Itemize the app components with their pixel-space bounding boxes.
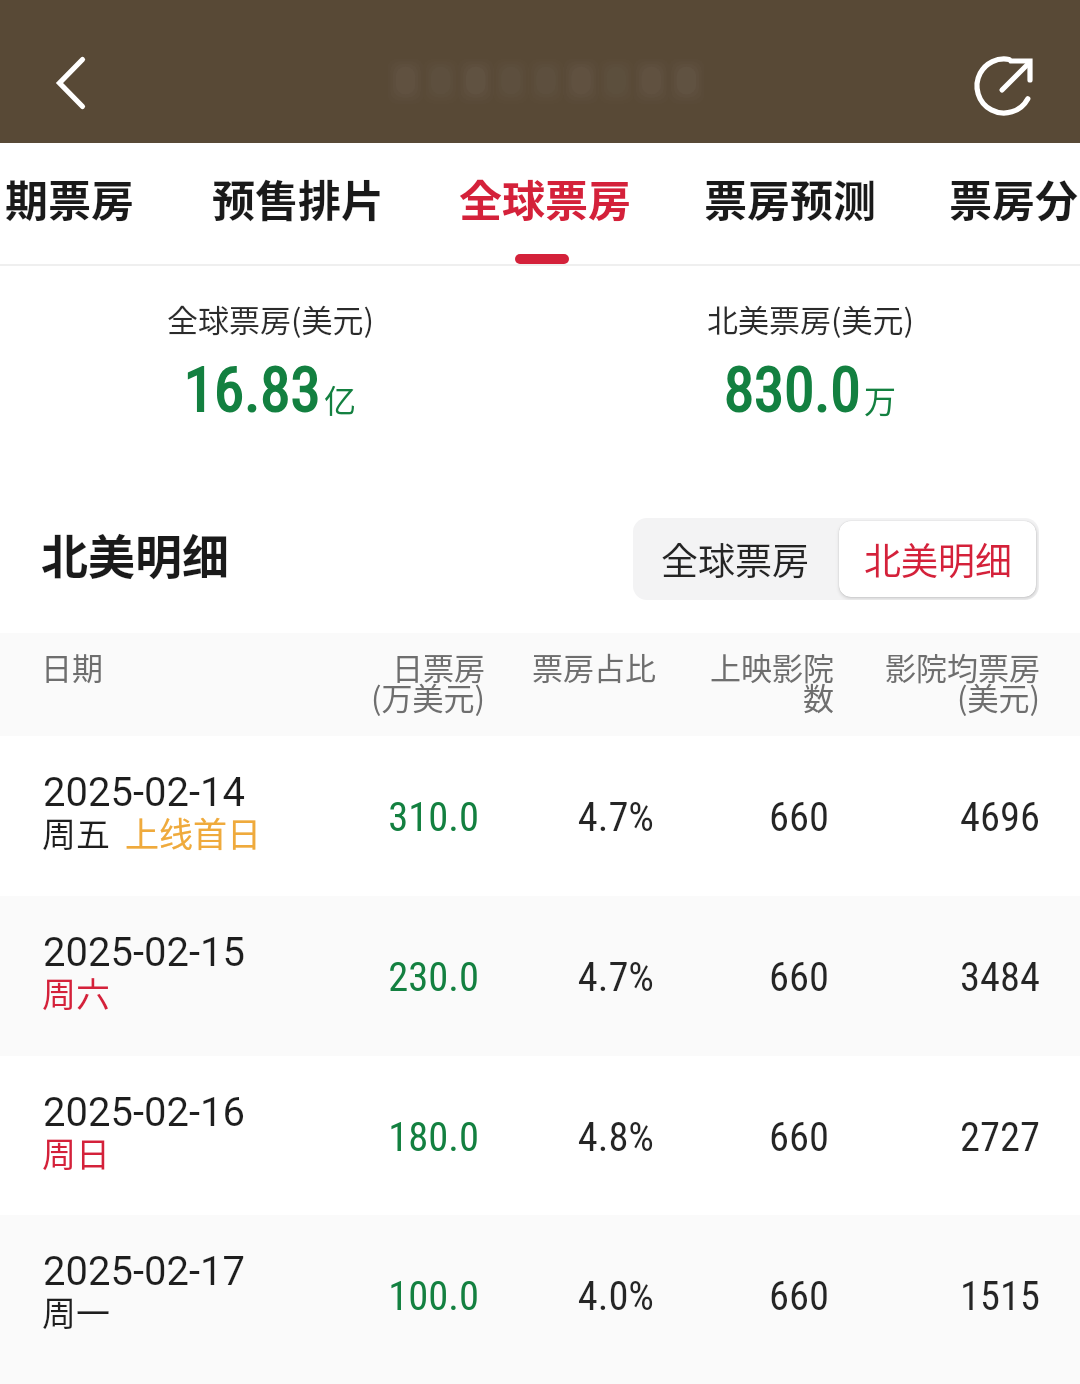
staticText: 2025-02-14	[43, 769, 245, 816]
button[interactable]: 预售排片	[212, 167, 384, 229]
button[interactable]: 期票房	[5, 167, 134, 229]
staticText: 2727	[820, 1113, 1040, 1160]
staticText: 3484	[820, 953, 1040, 1000]
staticText: 上线首日	[125, 808, 261, 857]
staticText: 4.7%	[434, 793, 654, 840]
staticText: 日票房	[225, 644, 485, 689]
staticText: 660	[609, 793, 829, 840]
staticText: (美元)	[780, 674, 1040, 719]
staticText: 2025-02-17	[43, 1248, 245, 1295]
staticText: 北美明细	[864, 532, 1012, 586]
staticText: 周日	[42, 1128, 110, 1177]
staticText: 票房分	[949, 167, 1078, 229]
staticText: 660	[609, 953, 829, 1000]
staticText: 230.0	[259, 953, 479, 1000]
button[interactable]: 票房预测	[704, 167, 876, 229]
staticText: 亿	[324, 376, 357, 422]
staticText: 2025-02-16	[43, 1089, 245, 1136]
staticText: 北美票房(美元)	[707, 296, 914, 341]
staticText: 影院均票房	[780, 644, 1040, 689]
staticText: 周一	[42, 1287, 110, 1336]
staticText: 660	[609, 1272, 829, 1319]
staticText: 期票房	[5, 167, 134, 229]
staticText: 票房预测	[704, 167, 876, 229]
button[interactable]: Share	[960, 42, 1048, 130]
button[interactable]: Back	[27, 39, 115, 127]
button[interactable]: 票房分	[949, 167, 1078, 229]
button[interactable]: 2025-02-16	[0, 1056, 1080, 1216]
staticText: 万	[864, 376, 897, 422]
staticText: 4.7%	[434, 953, 654, 1000]
staticText: 全球票房	[661, 532, 809, 586]
staticText: 预售排片	[212, 167, 384, 229]
staticText: 4696	[820, 793, 1040, 840]
staticText: 上映影院	[574, 644, 834, 689]
button[interactable]: 2025-02-14	[0, 736, 1080, 896]
staticText: 全球票房(美元)	[167, 296, 374, 341]
button[interactable]: 北美明细	[839, 521, 1036, 597]
button[interactable]: 全球票房	[459, 167, 631, 264]
staticText: 16.83	[184, 354, 321, 425]
staticText: 1515	[820, 1272, 1040, 1319]
button[interactable]: 2025-02-17	[0, 1215, 1080, 1375]
staticText: 660	[609, 1113, 829, 1160]
button[interactable]: 全球票房	[633, 518, 836, 600]
staticText: 北美明细	[41, 519, 229, 587]
staticText: 票房占比	[396, 644, 656, 689]
button[interactable]: 2025-02-15	[0, 896, 1080, 1056]
staticText: 180.0	[259, 1113, 479, 1160]
staticText: 周六	[42, 968, 110, 1017]
staticText: 310.0	[259, 793, 479, 840]
staticText: 830.0	[724, 354, 861, 425]
staticText: (万美元)	[225, 674, 485, 719]
staticText: 日期	[41, 644, 103, 689]
staticText: 100.0	[259, 1272, 479, 1319]
staticText: 数	[574, 674, 834, 719]
staticText: 全球票房	[459, 167, 631, 229]
staticText: 4.8%	[434, 1113, 654, 1160]
staticText: 4.0%	[434, 1272, 654, 1319]
staticText: 2025-02-15	[43, 929, 245, 976]
staticText: 周五	[42, 808, 110, 857]
